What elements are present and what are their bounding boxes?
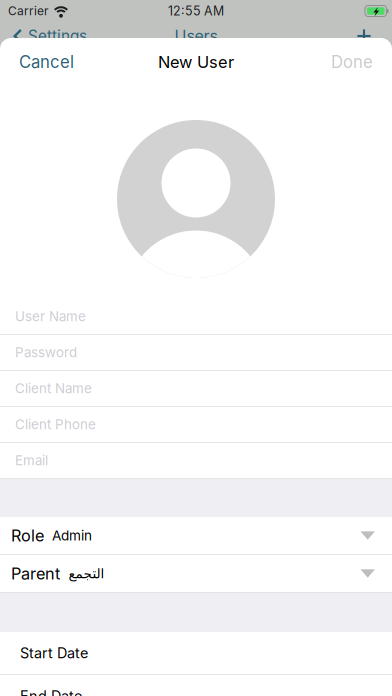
button[interactable]: Start Date	[0, 632, 392, 674]
staticText: Parent	[11, 564, 60, 583]
staticText: Start Date	[20, 644, 88, 662]
button[interactable]: Settings	[0, 22, 87, 50]
button[interactable]: Done	[312, 38, 392, 86]
staticText: Client Name	[15, 380, 92, 396]
button[interactable]: Cancel	[0, 38, 93, 86]
staticText: Done	[331, 52, 373, 72]
button[interactable]: Role	[0, 517, 392, 554]
staticText: Client Phone	[15, 416, 96, 432]
staticText: Admin	[52, 527, 92, 544]
button[interactable]: Add user	[356, 22, 392, 50]
staticText: Password	[15, 344, 77, 360]
staticText: New User	[158, 52, 234, 72]
staticText: Carrier	[8, 4, 49, 18]
button[interactable]: End Date	[0, 675, 392, 696]
staticText: User Name	[15, 308, 86, 324]
staticText: التجمع	[68, 566, 104, 581]
button[interactable]: Parent	[0, 555, 392, 592]
staticText: Role	[11, 526, 44, 545]
staticText: End Date	[20, 687, 82, 696]
staticText: Users	[174, 26, 217, 46]
staticText: Email	[15, 452, 48, 468]
staticText: Settings	[28, 27, 87, 45]
staticText: 12:55 AM	[168, 3, 224, 18]
staticText: Cancel	[19, 52, 74, 72]
